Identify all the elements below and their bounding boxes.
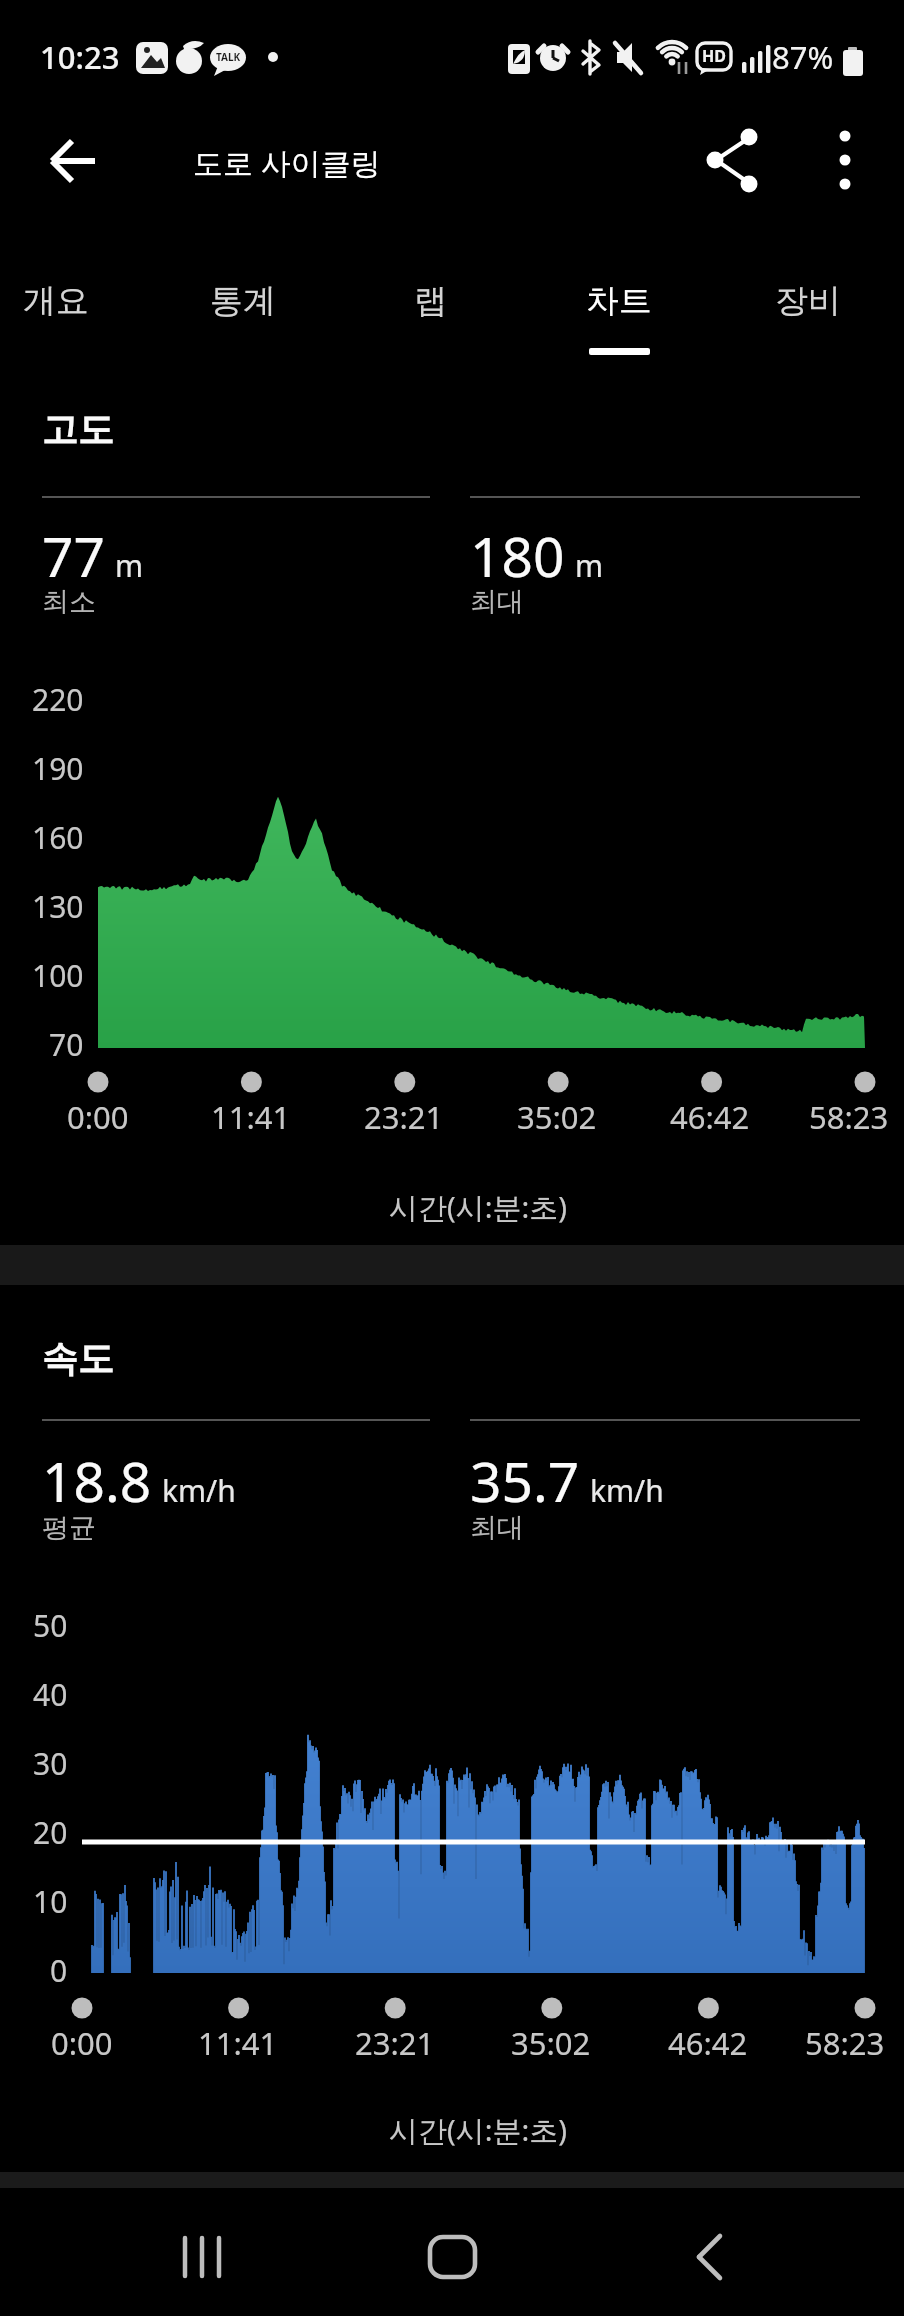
staticText: 최대 xyxy=(470,1511,524,1545)
staticText: 58:23 xyxy=(809,1096,889,1138)
staticText: 0:00 xyxy=(51,2022,113,2064)
staticText: 랩 xyxy=(414,280,447,322)
staticText: m xyxy=(115,545,144,586)
staticText: TALK xyxy=(216,50,241,64)
staticText: 100 xyxy=(32,955,84,996)
staticText: 23:21 xyxy=(364,1096,444,1138)
staticText: 도로 사이클링 xyxy=(193,142,381,183)
staticText: 58:23 xyxy=(805,2022,885,2064)
button[interactable] xyxy=(650,2197,770,2316)
staticText: 35.7 xyxy=(470,1443,580,1518)
staticText: 0:00 xyxy=(67,1096,129,1138)
staticText: 87% xyxy=(772,36,834,78)
staticText: 77 xyxy=(42,518,105,593)
staticText: 0 xyxy=(50,1950,68,1991)
staticText: 130 xyxy=(32,886,84,927)
staticText: 장비 xyxy=(775,280,841,322)
staticText: km/h xyxy=(162,1470,236,1511)
staticText: 10:23 xyxy=(40,36,120,78)
staticText: 평균 xyxy=(42,1511,96,1545)
staticText: 11:41 xyxy=(211,1096,291,1138)
staticText: 160 xyxy=(32,817,84,858)
staticText: 46:42 xyxy=(670,1096,750,1138)
staticText: HD xyxy=(702,45,726,67)
staticText: 차트 xyxy=(586,280,652,322)
button[interactable] xyxy=(143,2197,263,2316)
staticText: 20 xyxy=(33,1812,68,1853)
staticText: 시간(시:분:초) xyxy=(389,2110,567,2150)
staticText: 최소 xyxy=(42,585,96,619)
staticText: 시간(시:분:초) xyxy=(389,1187,567,1227)
staticText: 50 xyxy=(33,1605,68,1646)
staticText: 180 xyxy=(470,518,565,593)
button[interactable]: 랩 xyxy=(340,245,520,357)
staticText: 30 xyxy=(33,1743,68,1784)
staticText: 속도 xyxy=(42,1336,114,1381)
button[interactable]: 통계 xyxy=(153,245,333,357)
staticText: 46:42 xyxy=(668,2022,748,2064)
staticText: km/h xyxy=(590,1470,664,1511)
button[interactable] xyxy=(392,2197,512,2316)
button[interactable] xyxy=(687,114,779,206)
staticText: 220 xyxy=(32,679,84,720)
button[interactable] xyxy=(799,114,891,206)
staticText: 11:41 xyxy=(198,2022,278,2064)
staticText: 18.8 xyxy=(42,1443,152,1518)
button[interactable]: 개요 xyxy=(0,245,146,357)
staticText: 70 xyxy=(49,1024,84,1065)
staticText: 10 xyxy=(33,1881,68,1922)
staticText: 23:21 xyxy=(355,2022,435,2064)
staticText: 최대 xyxy=(470,585,524,619)
staticText: 40 xyxy=(33,1674,68,1715)
staticText: 고도 xyxy=(42,407,114,452)
button[interactable]: 장비 xyxy=(718,245,898,357)
button[interactable] xyxy=(26,115,118,207)
button[interactable]: 차트 xyxy=(529,245,709,357)
staticText: 35:02 xyxy=(517,1096,597,1138)
staticText: 190 xyxy=(32,748,84,789)
staticText: 통계 xyxy=(210,280,276,322)
staticText: 35:02 xyxy=(511,2022,591,2064)
staticText: 개요 xyxy=(23,280,89,322)
staticText: m xyxy=(575,545,604,586)
